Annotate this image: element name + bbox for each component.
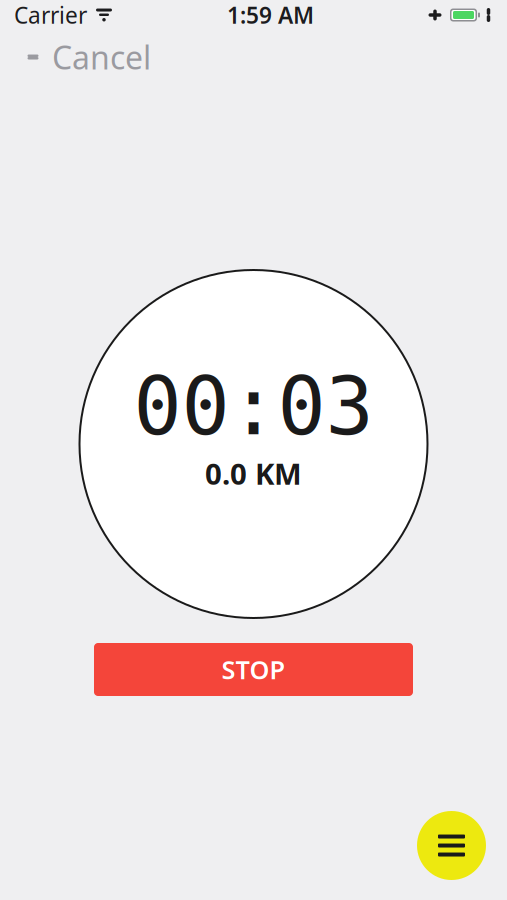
button[interactable]: Menu [417, 811, 486, 880]
staticText: 1:59 AM [227, 0, 314, 30]
staticText: STOP [221, 653, 285, 686]
staticText: Carrier [14, 0, 87, 30]
button[interactable]: STOP [94, 643, 413, 696]
button[interactable]: Cancel [0, 26, 167, 88]
staticText: 00:03 [133, 361, 373, 452]
staticText: Cancel [52, 36, 151, 78]
staticText: 0.0 KM [205, 454, 302, 493]
